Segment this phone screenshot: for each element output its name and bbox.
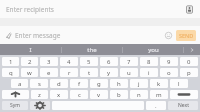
staticText: f [78,80,81,88]
button[interactable]: p [180,68,198,77]
button[interactable]: Sym [2,101,28,110]
staticText: 0 [187,58,191,66]
staticText: c [78,91,81,99]
button[interactable]: j [130,79,148,88]
staticText: 9 [167,58,171,66]
staticText: 5 [87,58,91,66]
button[interactable]: you [123,44,183,55]
button[interactable]: t [80,68,98,77]
button[interactable]: 1 [2,57,19,66]
button[interactable]: b [110,90,128,99]
staticText: p [187,69,191,77]
staticText: . [155,102,157,110]
staticText: h [117,80,121,88]
staticText: 6 [107,58,111,66]
staticText: you [148,46,159,54]
staticText: 7 [127,58,131,66]
button[interactable]: 0 [180,57,198,66]
button[interactable]: m [150,90,168,99]
button[interactable]: SEND [176,30,196,41]
button[interactable]: w [21,68,38,77]
staticText: 3 [47,58,51,66]
staticText: q [9,69,13,77]
staticText: u [127,69,131,77]
button[interactable]: 8 [140,57,158,66]
button[interactable]: q [2,68,19,77]
button[interactable]: Keyboard settings [30,101,50,110]
staticText: e [47,69,51,77]
staticText: o [167,69,171,77]
button[interactable]: Backspace [170,90,198,99]
button[interactable]: 5 [80,57,98,66]
button[interactable]: Enter message [15,26,164,44]
button[interactable]: l [170,79,188,88]
staticText: 8 [147,58,151,66]
staticText: x [57,91,61,99]
button[interactable]: u [120,68,138,77]
staticText: Sym [10,102,20,109]
staticText: t [88,69,91,77]
staticText: SEND [179,32,194,39]
staticText: Enter recipients [6,5,54,14]
staticText: s [38,80,41,88]
button[interactable]: h [110,79,128,88]
button[interactable]: y [100,68,118,77]
button[interactable]: 6 [100,57,118,66]
button[interactable]: f [70,79,88,88]
button[interactable]: 9 [160,57,178,66]
staticText: g [97,80,101,88]
staticText: a [18,80,22,88]
button[interactable]: k [150,79,168,88]
staticText: w [27,69,32,77]
staticText: z [38,91,41,99]
staticText: Enter message [15,31,61,40]
staticText: 1 [9,58,13,66]
button[interactable]: I [0,44,61,55]
staticText: 2 [28,58,32,66]
staticText: d [57,80,61,88]
button[interactable]: e [40,68,58,77]
button[interactable]: i [140,68,158,77]
button[interactable]: Enter recipients [0,0,200,18]
staticText: k [157,80,161,88]
staticText: j [138,80,140,88]
button[interactable]: 4 [60,57,78,66]
staticText: r [68,69,71,77]
button[interactable]: 3 [40,57,58,66]
button[interactable]: r [60,68,78,77]
staticText: i [148,69,150,77]
button[interactable]: n [130,90,148,99]
staticText: I [29,46,32,54]
button[interactable]: o [160,68,178,77]
staticText: y [107,69,111,77]
button[interactable]: d [50,79,68,88]
staticText: v [97,91,101,99]
staticText: the [87,46,97,54]
button[interactable]: 7 [120,57,138,66]
button[interactable]: Attach file [4,31,13,40]
button[interactable]: a [11,79,28,88]
button[interactable]: c [70,90,88,99]
button[interactable]: the [62,44,122,55]
button[interactable]: Add recipient from contacts [185,5,194,14]
button[interactable]: More suggestions [184,44,200,55]
button[interactable]: v [90,90,108,99]
button[interactable]: Shift [2,90,29,99]
button[interactable]: Next [168,101,198,110]
button[interactable]: x [50,90,68,99]
button[interactable]: z [31,90,48,99]
staticText: n [137,91,141,99]
button[interactable]: . [146,101,166,110]
button[interactable]: Insert emoji [164,31,173,40]
staticText: l [178,80,180,88]
button[interactable]: 2 [21,57,38,66]
staticText: Next [178,102,189,109]
button[interactable]: s [30,79,48,88]
staticText: 4 [67,58,71,66]
staticText: m [156,91,162,99]
staticText: b [117,91,121,99]
button[interactable]: g [90,79,108,88]
